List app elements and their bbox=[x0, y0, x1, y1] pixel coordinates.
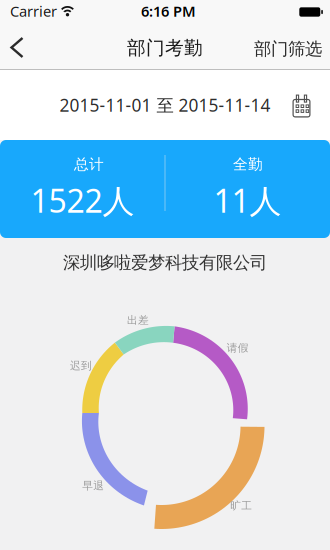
staticText: 迟到 bbox=[70, 359, 92, 372]
staticText: 部门考勤 bbox=[127, 36, 203, 59]
staticText: 部门筛选 bbox=[254, 38, 322, 60]
button[interactable]: 部门筛选 bbox=[254, 23, 330, 69]
staticText: 1522人 bbox=[30, 179, 134, 222]
staticText: 11人 bbox=[213, 179, 281, 222]
button[interactable]: Back bbox=[0, 22, 34, 70]
staticText: 出差 bbox=[127, 314, 149, 327]
staticText: Carrier bbox=[10, 1, 57, 21]
staticText: 6:16 PM bbox=[141, 1, 196, 21]
staticText: 全勤 bbox=[233, 155, 263, 173]
button[interactable]: Choose dates bbox=[292, 94, 310, 117]
staticText: 早退 bbox=[82, 479, 104, 492]
staticText: 旷工 bbox=[230, 499, 252, 512]
staticText: 深圳哆啦爱梦科技有限公司 bbox=[63, 252, 267, 273]
staticText: 总计 bbox=[74, 155, 104, 173]
staticText: 2015-11-01 至 2015-11-14 bbox=[59, 93, 270, 116]
staticText: 请假 bbox=[227, 341, 249, 354]
